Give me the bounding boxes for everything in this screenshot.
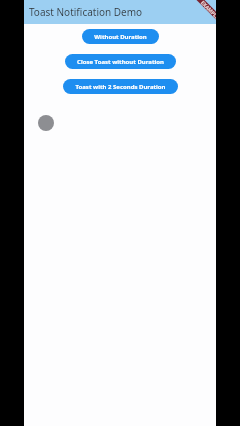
other: Example banner <box>190 0 216 26</box>
button[interactable]: Without Duration <box>82 29 159 44</box>
staticText: Without Duration <box>94 33 147 41</box>
button[interactable]: Toast with 2 Seconds Duration <box>63 79 178 94</box>
staticText: Toast with 2 Seconds Duration <box>75 83 166 91</box>
staticText: EXAMPLE <box>199 0 216 21</box>
staticText: Close Toast without Duration <box>77 58 164 66</box>
staticText: Toast Notification Demo <box>29 5 143 19</box>
button[interactable]: Close Toast without Duration <box>65 54 176 69</box>
